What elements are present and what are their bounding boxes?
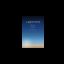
staticText: 72°	[30, 23, 36, 29]
staticText: Mostly Clear	[29, 29, 37, 31]
staticText: Cupertino	[25, 20, 40, 23]
